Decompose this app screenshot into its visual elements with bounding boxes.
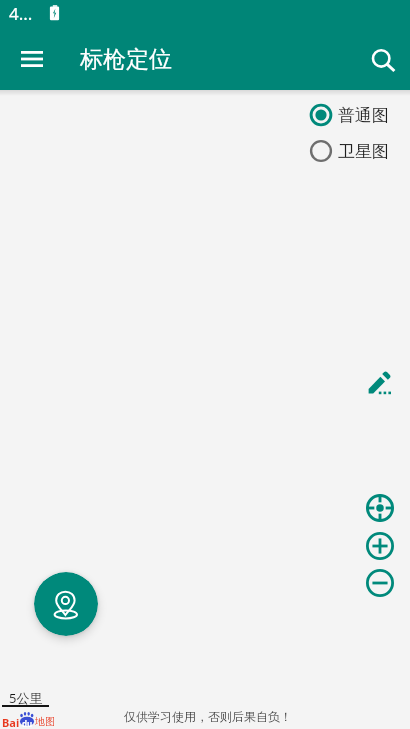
staticText: 普通图 — [338, 105, 389, 126]
button[interactable]: Draw route — [368, 371, 392, 395]
button[interactable]: Zoom out — [366, 569, 394, 597]
button[interactable]: 普通图 — [310, 104, 389, 126]
button[interactable]: Search — [361, 38, 407, 84]
button[interactable]: My location — [366, 494, 394, 522]
staticText: 标枪定位 — [80, 45, 172, 74]
button[interactable]: 卫星图 — [310, 140, 389, 162]
staticText: 4... — [9, 2, 33, 25]
staticText: Bai — [2, 715, 20, 729]
staticText: 卫星图 — [338, 141, 389, 162]
button[interactable]: Zoom in — [366, 532, 394, 560]
staticText: 地图 — [35, 715, 55, 728]
button[interactable]: Open navigation menu — [9, 36, 55, 82]
staticText: 仅供学习使用，否则后果自负！ — [124, 709, 292, 724]
button[interactable]: Add marker — [34, 572, 98, 636]
staticText: 5公里 — [9, 689, 43, 707]
staticText: du — [22, 718, 33, 729]
